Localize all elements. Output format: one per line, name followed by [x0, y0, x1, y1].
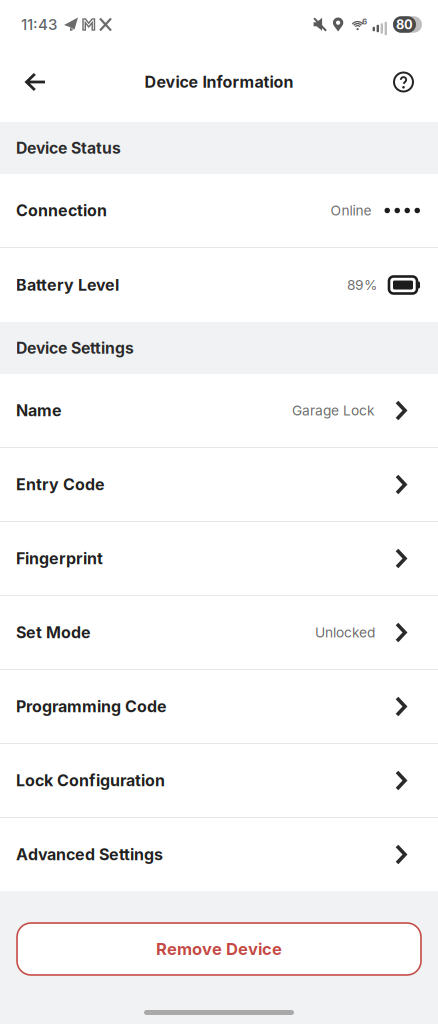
staticText: Name	[16, 401, 62, 420]
staticText: Fingerprint	[16, 549, 103, 568]
staticText: 89%	[347, 277, 377, 293]
staticText: Device Settings	[16, 338, 134, 357]
staticText: Device Information	[144, 72, 293, 92]
button[interactable]: Back	[0, 72, 46, 91]
staticText: 11:43	[21, 15, 57, 34]
button[interactable]: Entry Code	[0, 448, 438, 521]
staticText: Entry Code	[16, 475, 105, 494]
staticText: Garage Lock	[292, 402, 375, 419]
staticText: Advanced Settings	[16, 845, 163, 864]
button[interactable]: Set Mode	[0, 596, 438, 669]
staticText: Unlocked	[315, 624, 375, 641]
button[interactable]: Remove Device	[0, 923, 438, 975]
staticText: Programming Code	[16, 697, 167, 716]
staticText: Device Status	[16, 138, 121, 157]
staticText: Online	[330, 202, 371, 219]
staticText: Lock Configuration	[16, 771, 165, 790]
staticText: Connection	[16, 201, 107, 220]
button[interactable]: Help	[393, 71, 438, 92]
staticText: Battery Level	[16, 275, 119, 295]
staticText: 6	[362, 17, 367, 26]
staticText: Set Mode	[16, 623, 91, 642]
button[interactable]: Lock Configuration	[0, 744, 438, 817]
staticText: Remove Device	[156, 939, 282, 959]
button[interactable]: Advanced Settings	[0, 818, 438, 891]
button[interactable]: Programming Code	[0, 670, 438, 743]
button[interactable]: Fingerprint	[0, 522, 438, 595]
staticText: 80	[396, 17, 413, 32]
button[interactable]: Name	[0, 374, 438, 447]
